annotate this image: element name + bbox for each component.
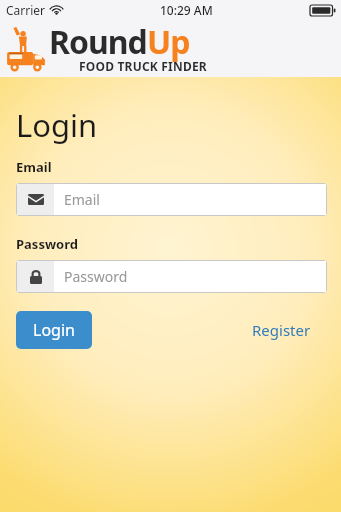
staticText: 10:29 AM [160,2,213,18]
staticText: Email [64,190,100,209]
button[interactable]: Email [16,183,327,216]
staticText: Login [16,104,98,146]
button[interactable]: Login [16,311,92,349]
staticText: Round [49,20,147,64]
button[interactable]: Password [16,260,327,293]
button[interactable]: Register [250,316,313,344]
staticText: Login [33,319,75,341]
staticText: Email [16,158,52,176]
staticText: Password [16,235,78,253]
staticText: Carrier [6,2,46,18]
staticText: Register [252,320,311,340]
staticText: Up [147,20,190,64]
staticText: FOOD TRUCK FINDER [79,58,207,71]
staticText: Password [64,267,128,286]
